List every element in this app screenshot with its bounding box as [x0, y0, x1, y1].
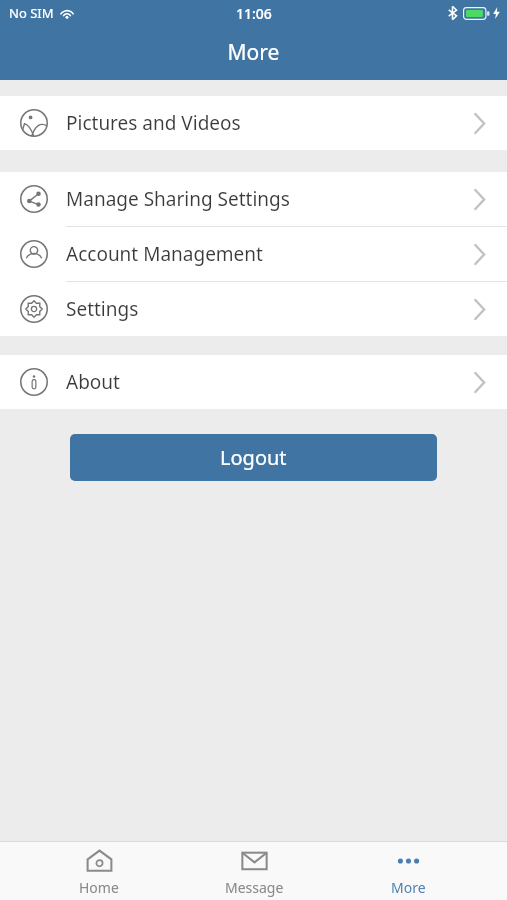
staticText: Message: [225, 878, 284, 897]
staticText: More: [0, 38, 507, 67]
button[interactable]: Manage Sharing Settings: [0, 172, 507, 226]
staticText: 11:06: [236, 4, 272, 23]
staticText: Account Management: [66, 241, 263, 267]
staticText: Manage Sharing Settings: [66, 186, 290, 212]
button[interactable]: Message: [199, 842, 309, 900]
button[interactable]: About: [0, 355, 507, 409]
button[interactable]: Logout: [70, 434, 437, 481]
button[interactable]: Account Management: [0, 227, 507, 281]
button[interactable]: Settings: [0, 282, 507, 336]
staticText: No SIM: [9, 4, 54, 22]
staticText: Pictures and Videos: [66, 110, 241, 136]
staticText: About: [66, 369, 120, 395]
staticText: Settings: [66, 296, 139, 322]
staticText: More: [391, 878, 426, 897]
button[interactable]: More: [353, 842, 463, 900]
staticText: Logout: [220, 444, 287, 471]
button[interactable]: Home: [44, 842, 154, 900]
button[interactable]: Pictures and Videos: [0, 96, 507, 150]
staticText: Home: [79, 878, 119, 897]
